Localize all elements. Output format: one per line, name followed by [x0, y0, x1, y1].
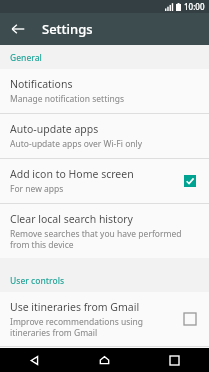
button[interactable]: Use itineraries from Gmail [0, 292, 209, 346]
button[interactable]: Notifications [0, 69, 209, 113]
button[interactable]: Unchecked [179, 308, 201, 330]
staticText: Auto-update apps over Wi-Fi only [10, 138, 143, 150]
staticText: General [10, 52, 42, 64]
button[interactable]: Recent apps [139, 348, 209, 372]
staticText: For new apps [10, 183, 64, 195]
staticText: User controls [10, 275, 65, 287]
staticText: Manage notification settings [10, 93, 124, 105]
staticText: Use itineraries from Gmail [10, 300, 140, 314]
button[interactable]: Back [5, 16, 31, 42]
staticText: Clear local search history [10, 212, 133, 226]
staticText: Remove searches that you have performed … [10, 228, 201, 250]
staticText: Settings [42, 20, 93, 38]
staticText: Add icon to Home screen [10, 167, 134, 181]
button[interactable]: Home [69, 348, 139, 372]
button[interactable]: Auto-update apps [0, 114, 209, 158]
button[interactable]: Clear local search history [0, 204, 209, 258]
button[interactable]: Back [0, 348, 69, 372]
staticText: Notifications [10, 77, 73, 91]
staticText: Improve recommendations using itinerarie… [10, 316, 173, 338]
button[interactable]: Checked [179, 170, 201, 192]
button[interactable]: Add icon to Home screen [0, 159, 209, 203]
staticText: Auto-update apps [10, 122, 99, 136]
staticText: 10:00 [184, 1, 205, 12]
